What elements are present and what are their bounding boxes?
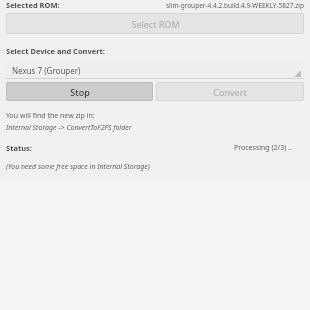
button[interactable]: Nexus 7 (Grouper) <box>6 62 304 79</box>
staticText: Nexus 7 (Grouper) <box>12 65 81 76</box>
staticText: Status: <box>6 143 32 153</box>
staticText: Select ROM <box>131 18 180 30</box>
staticText: Stop <box>70 86 90 98</box>
staticText: (You need some free space in Internal St… <box>6 162 150 172</box>
staticText: slim-grouper-4.4.2.build.4.9-WEEKLY-5827… <box>166 1 304 10</box>
staticText: Select Device and Convert: <box>6 46 105 56</box>
staticText: Selected ROM: <box>6 0 60 10</box>
button[interactable]: Select ROM <box>6 13 304 34</box>
staticText: You will find the new zip in: <box>6 111 95 121</box>
staticText: Internal Storage -> ConvertToF2FS folder <box>6 123 132 133</box>
button[interactable]: Convert <box>156 82 304 101</box>
button[interactable]: Stop <box>6 82 153 101</box>
staticText: Processing (2/3) .. <box>234 143 292 153</box>
staticText: Convert <box>213 86 247 98</box>
